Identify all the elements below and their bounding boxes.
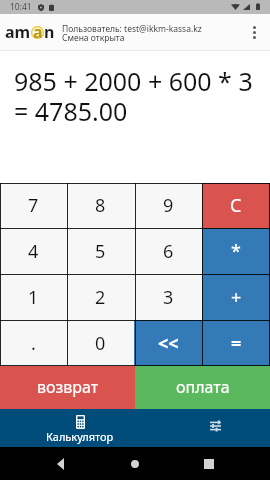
staticText: Пользователь: test@ikkm-kassa.kz bbox=[62, 23, 202, 35]
button[interactable]: + bbox=[202, 274, 270, 320]
staticText: 5 bbox=[95, 239, 106, 264]
button[interactable]: 8 bbox=[67, 183, 134, 228]
staticText: 1 bbox=[28, 285, 39, 310]
button[interactable]: 0 bbox=[67, 320, 134, 366]
staticText: 8 bbox=[95, 193, 106, 218]
button[interactable]: = bbox=[202, 320, 270, 366]
button[interactable]: Settings bbox=[160, 409, 270, 447]
staticText: 2 bbox=[95, 285, 106, 310]
staticText: 4 bbox=[28, 239, 39, 264]
staticText: 3 bbox=[163, 285, 174, 310]
button[interactable]: 7 bbox=[0, 183, 67, 228]
staticText: 0 bbox=[95, 331, 106, 356]
button[interactable]: Back bbox=[48, 452, 72, 476]
staticText: оплата bbox=[176, 376, 230, 398]
staticText: возврат bbox=[37, 376, 99, 398]
button[interactable]: 4 bbox=[0, 228, 67, 274]
staticText: a bbox=[33, 21, 43, 43]
button[interactable]: 3 bbox=[134, 274, 202, 320]
button[interactable]: 1 bbox=[0, 274, 67, 320]
staticText: 985 + 2000 + 600 * 3 bbox=[14, 64, 253, 98]
staticText: Смена открыта bbox=[62, 32, 125, 44]
button[interactable]: 2 bbox=[67, 274, 134, 320]
staticText: + bbox=[231, 285, 242, 310]
staticText: n bbox=[44, 21, 55, 43]
button[interactable]: Калькулятор bbox=[25, 409, 135, 447]
button[interactable]: * bbox=[202, 228, 270, 274]
button[interactable]: Home bbox=[123, 452, 147, 476]
button[interactable]: 5 bbox=[67, 228, 134, 274]
button[interactable]: Recents bbox=[197, 452, 221, 476]
staticText: 10:41 bbox=[10, 1, 32, 13]
staticText: . bbox=[31, 331, 36, 356]
staticText: am bbox=[5, 21, 31, 43]
staticText: << bbox=[158, 331, 179, 356]
button[interactable]: . bbox=[0, 320, 67, 366]
staticText: Калькулятор bbox=[46, 429, 114, 444]
button[interactable]: << bbox=[134, 320, 202, 366]
button[interactable]: More options bbox=[239, 14, 270, 51]
staticText: = bbox=[231, 331, 242, 356]
staticText: = 4785.00 bbox=[14, 94, 128, 128]
staticText: C bbox=[230, 193, 242, 218]
staticText: 7 bbox=[28, 193, 39, 218]
button[interactable]: возврат bbox=[0, 366, 135, 409]
staticText: 6 bbox=[163, 239, 174, 264]
button[interactable]: C bbox=[202, 183, 270, 228]
button[interactable]: 9 bbox=[134, 183, 202, 228]
staticText: * bbox=[231, 239, 241, 264]
button[interactable]: 6 bbox=[134, 228, 202, 274]
button[interactable]: оплата bbox=[135, 366, 270, 409]
staticText: 9 bbox=[163, 193, 174, 218]
